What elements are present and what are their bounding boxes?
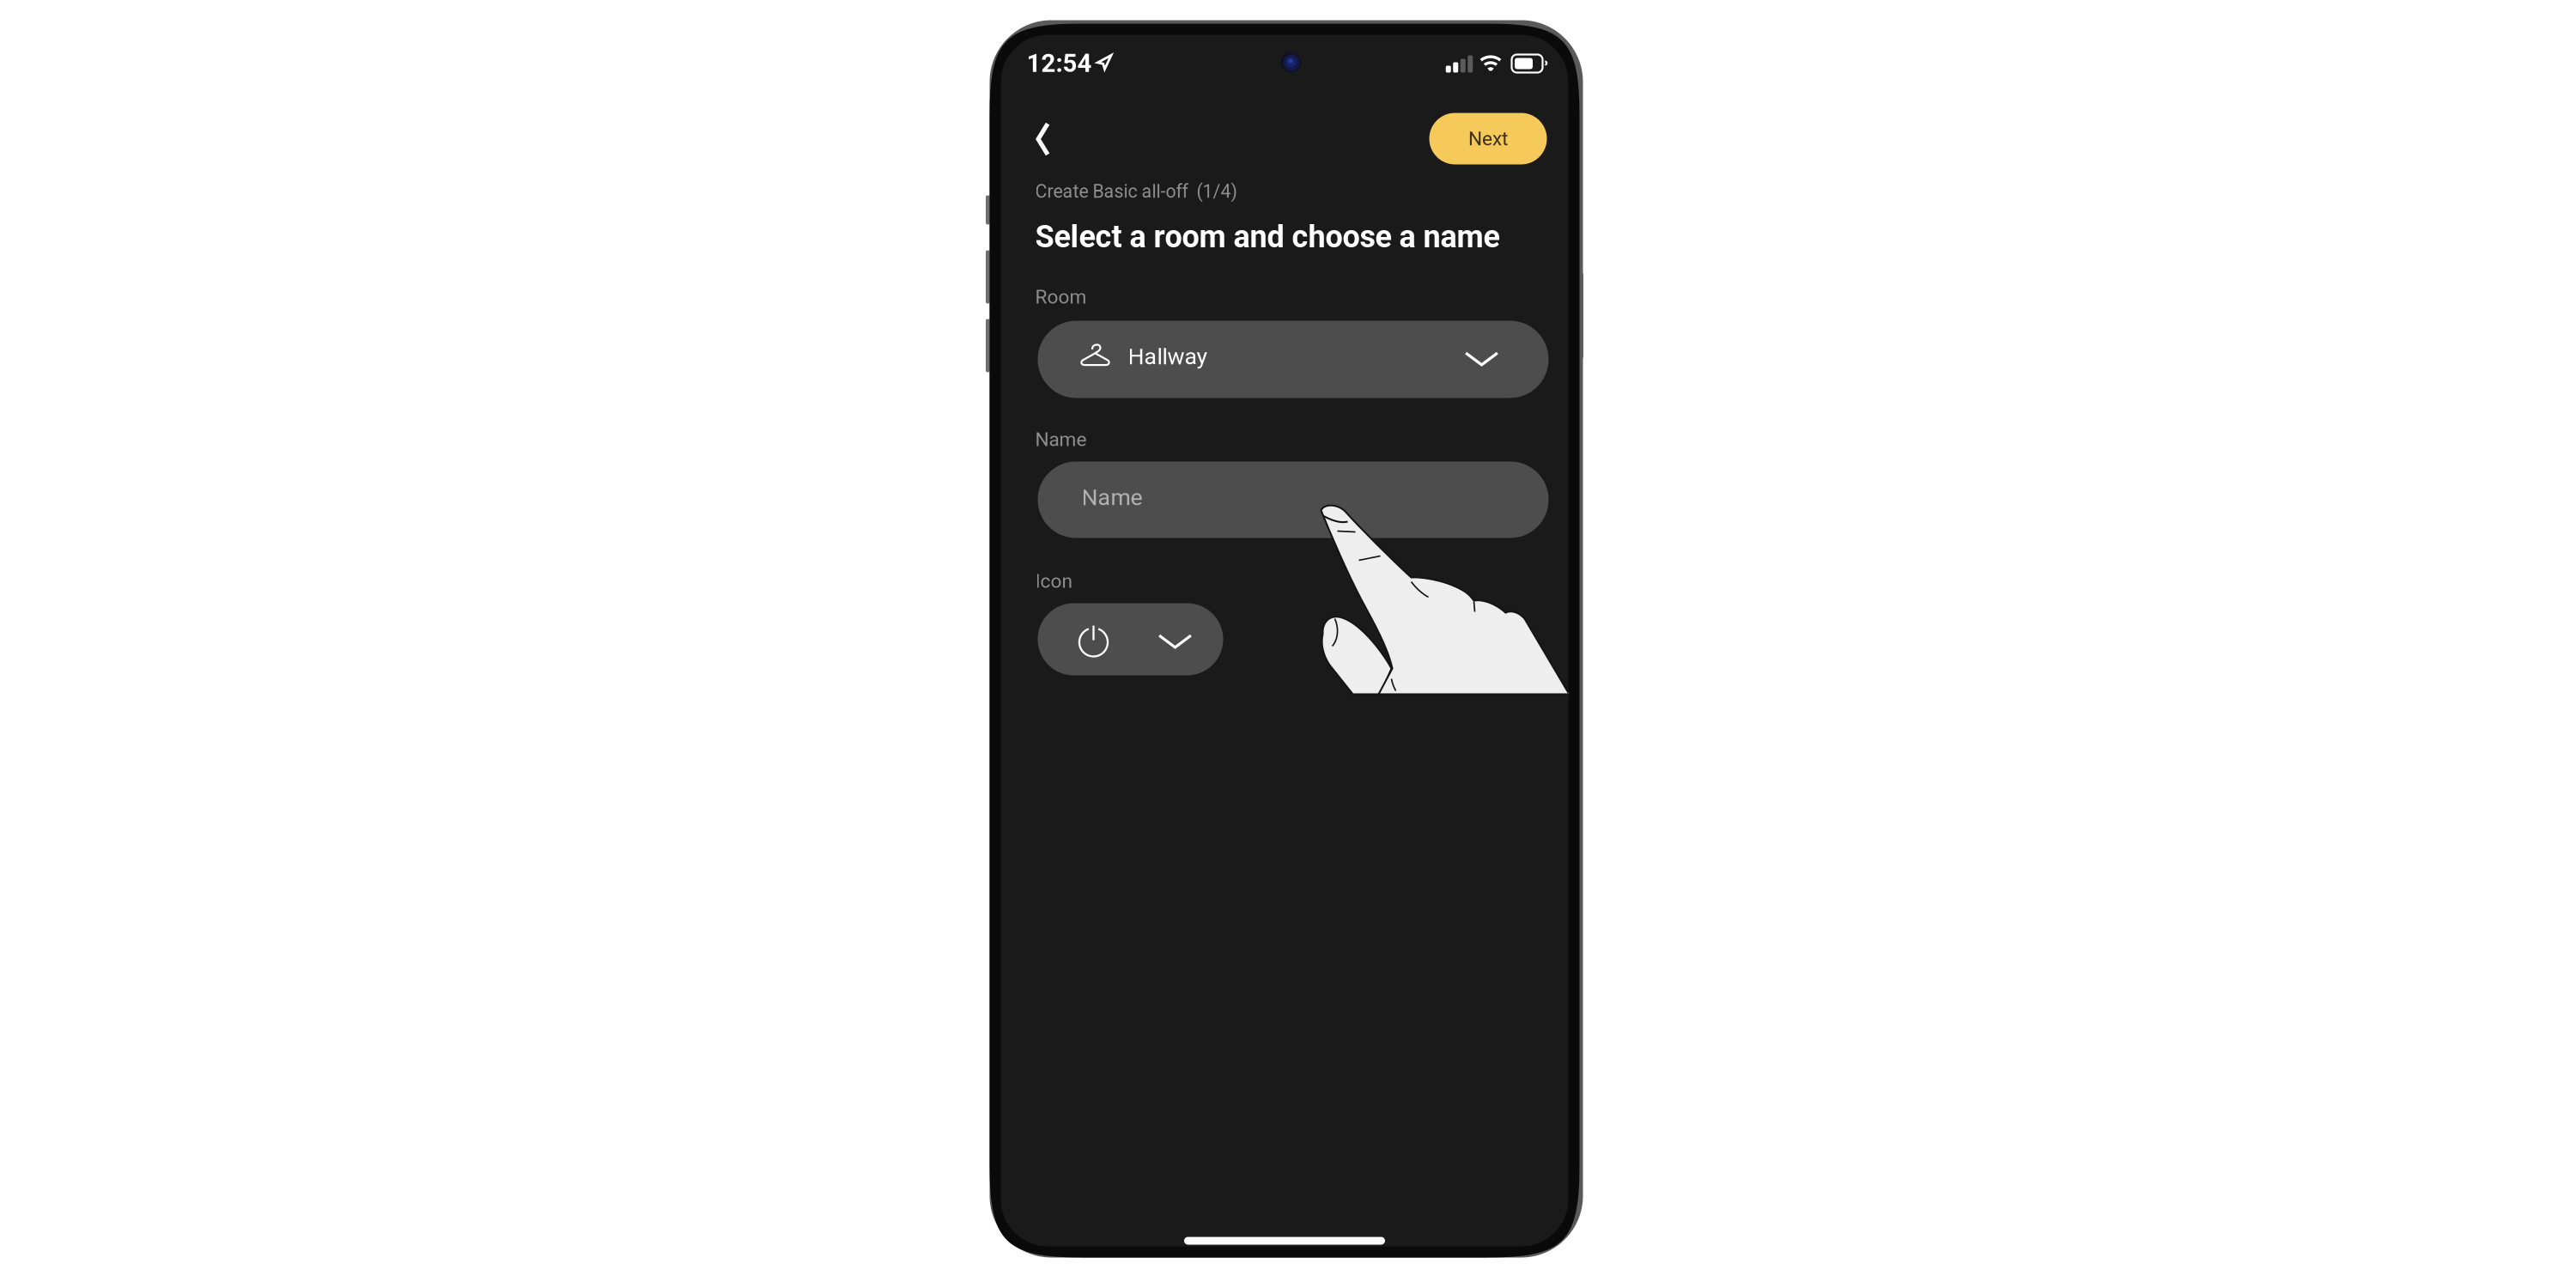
staticText: Next <box>1468 127 1508 150</box>
button[interactable]: Name <box>1038 462 1549 538</box>
button[interactable]: Hallway <box>1038 321 1549 398</box>
staticText: Name <box>1081 484 1142 511</box>
staticText: 12:54 <box>1027 49 1092 78</box>
staticText: Hallway <box>1128 343 1208 370</box>
button[interactable]: Back <box>1018 113 1068 165</box>
button[interactable] <box>1038 603 1223 675</box>
button[interactable]: Next <box>1429 113 1547 164</box>
staticText: Icon <box>1035 570 1073 593</box>
staticText: Create Basic all-off (1/4) <box>1035 181 1237 202</box>
staticText: Select a room and choose a name <box>1035 219 1500 255</box>
staticText: Room <box>1035 286 1087 308</box>
staticText: Name <box>1035 428 1087 451</box>
